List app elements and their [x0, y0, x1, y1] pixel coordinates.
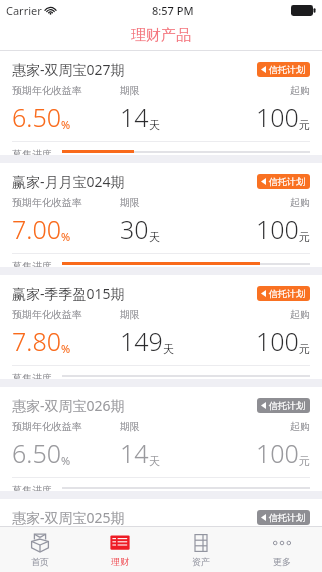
- button[interactable]: 信托计划: [257, 62, 310, 77]
- staticText: 期限: [120, 308, 140, 321]
- staticText: 募集进度: [12, 484, 52, 491]
- staticText: 7.00: [12, 212, 61, 246]
- staticText: 100: [256, 100, 299, 134]
- staticText: 更多: [273, 556, 291, 567]
- staticText: %: [61, 117, 71, 132]
- staticText: 信托计划: [269, 64, 305, 75]
- staticText: 起购: [290, 196, 310, 209]
- staticText: 149: [120, 324, 163, 358]
- staticText: 惠家-双周宝025期: [12, 508, 125, 527]
- staticText: 元: [299, 230, 310, 244]
- staticText: 预期年化收益率: [12, 196, 82, 209]
- staticText: 预期年化收益率: [12, 420, 82, 433]
- staticText: 募集进度: [12, 260, 52, 267]
- staticText: 惠家-双周宝027期: [12, 60, 125, 79]
- staticText: 14: [120, 100, 149, 134]
- button[interactable]: 理财: [80, 528, 160, 571]
- staticText: 资产: [192, 556, 210, 567]
- staticText: 期限: [120, 196, 140, 209]
- staticText: 理财: [111, 556, 129, 567]
- staticText: 元: [299, 118, 310, 132]
- staticText: 起购: [290, 420, 310, 433]
- staticText: %: [61, 341, 71, 356]
- button[interactable]: 首页: [0, 528, 80, 571]
- staticText: 起购: [290, 308, 310, 321]
- button[interactable]: 信托计划: [257, 286, 310, 301]
- staticText: 8:57 PM: [152, 3, 194, 18]
- button[interactable]: 信托计划: [257, 510, 310, 525]
- button[interactable]: 惠家-双周宝027期: [0, 51, 322, 155]
- staticText: 14: [120, 436, 149, 470]
- staticText: 信托计划: [269, 400, 305, 411]
- staticText: 预期年化收益率: [12, 308, 82, 321]
- button[interactable]: 赢家-季季盈015期: [0, 275, 322, 379]
- staticText: 信托计划: [269, 512, 305, 523]
- staticText: 100: [256, 212, 299, 246]
- staticText: 天: [163, 342, 174, 356]
- button[interactable]: 信托计划: [257, 174, 310, 189]
- staticText: 期限: [120, 532, 140, 545]
- staticText: 信托计划: [269, 288, 305, 299]
- button[interactable]: 惠家-双周宝025期: [0, 499, 322, 572]
- staticText: 理财产品: [131, 26, 191, 45]
- staticText: 6.50: [12, 548, 61, 572]
- staticText: 信托计划: [269, 176, 305, 187]
- staticText: 6.50: [12, 436, 61, 470]
- staticText: 天: [149, 230, 160, 244]
- staticText: 元: [299, 342, 310, 356]
- staticText: 天: [149, 118, 160, 132]
- staticText: %: [61, 453, 71, 468]
- staticText: 赢家-季季盈015期: [12, 284, 125, 303]
- button[interactable]: 惠家-双周宝026期: [0, 387, 322, 491]
- staticText: 30: [120, 212, 149, 246]
- staticText: 7.80: [12, 324, 61, 358]
- staticText: 100: [256, 324, 299, 358]
- staticText: 预期年化收益率: [12, 532, 82, 545]
- staticText: 募集进度: [12, 372, 52, 379]
- staticText: 6.50: [12, 100, 61, 134]
- staticText: 期限: [120, 84, 140, 97]
- staticText: 惠家-双周宝026期: [12, 396, 125, 415]
- staticText: %: [61, 229, 71, 244]
- button[interactable]: 信托计划: [257, 398, 310, 413]
- staticText: 100: [256, 436, 299, 470]
- button[interactable]: 更多: [241, 528, 322, 571]
- staticText: 赢家-月月宝024期: [12, 172, 125, 191]
- staticText: 元: [299, 454, 310, 468]
- staticText: 募集进度: [12, 148, 52, 155]
- staticText: 期限: [120, 420, 140, 433]
- button[interactable]: 资产: [160, 528, 241, 571]
- staticText: 14: [120, 548, 149, 572]
- staticText: 首页: [31, 556, 49, 567]
- staticText: 天: [149, 454, 160, 468]
- staticText: 起购: [290, 532, 310, 545]
- staticText: Carrier: [6, 3, 42, 18]
- staticText: 100: [256, 548, 299, 572]
- button[interactable]: 赢家-月月宝024期: [0, 163, 322, 267]
- staticText: 起购: [290, 84, 310, 97]
- staticText: 预期年化收益率: [12, 84, 82, 97]
